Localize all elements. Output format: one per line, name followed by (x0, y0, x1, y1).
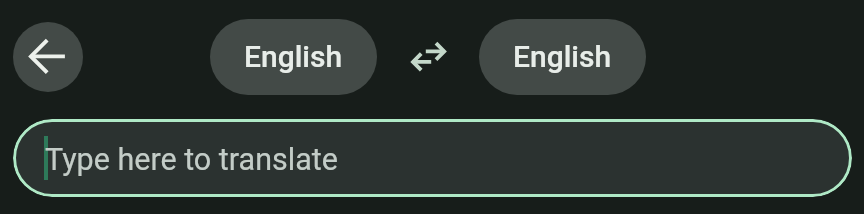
button[interactable]: Type here to translate (13, 119, 852, 197)
staticText: English (513, 39, 612, 74)
staticText: Type here to translate (45, 142, 338, 178)
button[interactable]: Back (13, 22, 83, 92)
button[interactable]: Swap languages (392, 22, 462, 92)
button[interactable]: English (479, 19, 646, 95)
button[interactable]: English (210, 19, 377, 95)
staticText: English (244, 39, 343, 74)
